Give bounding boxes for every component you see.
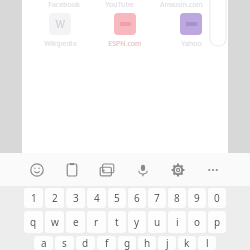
staticText: Wikipedia (44, 39, 77, 49)
button[interactable]: l (198, 236, 216, 250)
button[interactable]: 8 (168, 188, 186, 208)
button[interactable]: ESPN.com (97, 13, 153, 49)
staticText: i (176, 215, 179, 229)
staticText: o (194, 215, 201, 229)
staticText: 2 (52, 191, 58, 205)
staticText: r (94, 215, 99, 229)
staticText: 6 (134, 191, 140, 205)
staticText: u (154, 215, 161, 229)
staticText: g (124, 236, 131, 250)
staticText: 9 (194, 191, 200, 205)
button[interactable]: i (168, 211, 186, 233)
staticText: 1 (31, 191, 37, 205)
staticText: q (30, 215, 37, 229)
button[interactable]: q (24, 211, 43, 233)
staticText: e (73, 215, 79, 229)
button[interactable]: j (158, 236, 176, 250)
staticText: h (144, 236, 151, 250)
button[interactable]: 9 (188, 188, 206, 208)
button[interactable]: Emoji (26, 159, 48, 181)
staticText: p (214, 215, 221, 229)
staticText: 8 (174, 191, 180, 205)
staticText: j (166, 236, 169, 250)
button[interactable]: g (118, 236, 136, 250)
staticText: y (134, 215, 140, 229)
staticText: 5 (114, 191, 120, 205)
button[interactable]: d (76, 236, 95, 250)
staticText: Amazon.com (160, 0, 203, 8)
staticText: t (115, 215, 119, 229)
staticText: ESPN.com (108, 39, 142, 49)
staticText: s (62, 236, 67, 250)
staticText: a (41, 236, 47, 250)
staticText: d (82, 236, 89, 250)
button[interactable]: 6 (128, 188, 146, 208)
staticText: Facebook (48, 0, 80, 8)
button[interactable]: a (34, 236, 53, 250)
button[interactable]: r (87, 211, 106, 233)
button[interactable]: f (97, 236, 116, 250)
button[interactable]: 3 (66, 188, 85, 208)
button[interactable]: 4 (87, 188, 106, 208)
button[interactable]: 1 (24, 188, 43, 208)
button[interactable]: w (45, 211, 64, 233)
staticText: 3 (73, 191, 79, 205)
button[interactable]: Clipboard (61, 159, 83, 181)
button[interactable]: 0 (208, 188, 226, 208)
button[interactable]: Yahoo (163, 13, 219, 49)
button[interactable]: p (208, 211, 226, 233)
button[interactable]: 7 (148, 188, 166, 208)
staticText: f (105, 236, 109, 250)
button[interactable]: y (128, 211, 146, 233)
button[interactable]: Stickers (96, 159, 118, 181)
staticText: l (206, 236, 209, 250)
button[interactable]: Voice input (132, 159, 154, 181)
staticText: w (51, 215, 59, 229)
button[interactable]: o (188, 211, 206, 233)
button[interactable]: e (66, 211, 85, 233)
staticText: 4 (94, 191, 100, 205)
button[interactable]: Settings (167, 159, 189, 181)
button[interactable]: W (32, 13, 88, 49)
button[interactable]: 2 (45, 188, 64, 208)
button[interactable]: k (178, 236, 196, 250)
staticText: k (184, 236, 190, 250)
staticText: 7 (154, 191, 160, 205)
staticText: 0 (214, 191, 220, 205)
button[interactable]: t (108, 211, 126, 233)
staticText: Yahoo (181, 39, 202, 49)
staticText: W (55, 17, 66, 31)
button[interactable]: More options (202, 159, 224, 181)
button[interactable]: u (148, 211, 166, 233)
button[interactable]: h (138, 236, 156, 250)
button[interactable]: 5 (108, 188, 126, 208)
button[interactable]: s (55, 236, 74, 250)
staticText: YouTube (105, 0, 134, 8)
